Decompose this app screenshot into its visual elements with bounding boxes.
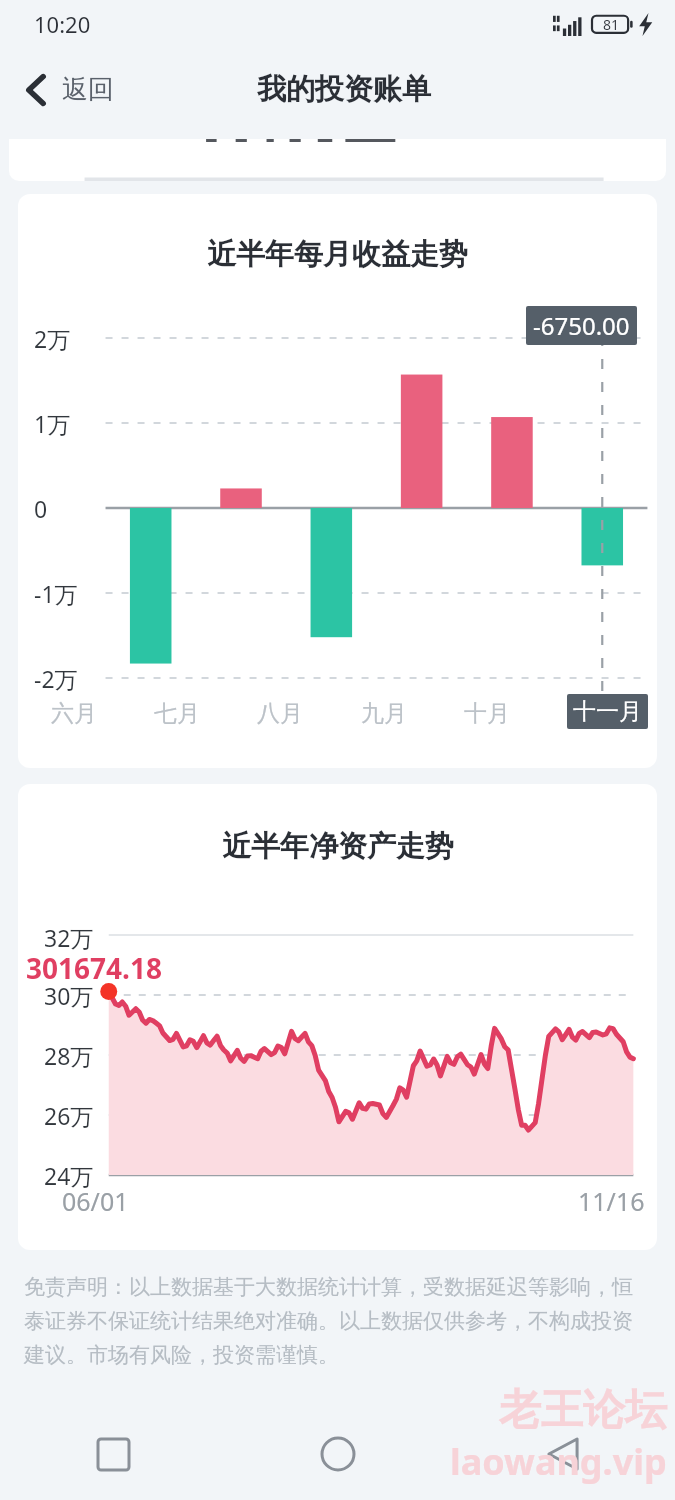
staticText: 10:20 — [34, 9, 91, 39]
button[interactable]: Recent apps — [69, 1410, 157, 1498]
staticText: 我的投资账单 — [257, 71, 431, 108]
staticText: 免责声明：以上数据基于大数据统计计算，受数据延迟等影响，恒泰证券不保证统计结果绝… — [24, 1274, 651, 1369]
staticText: 七月 — [154, 699, 200, 728]
staticText: 十月 — [464, 699, 510, 728]
button[interactable]: Back — [519, 1410, 607, 1498]
staticText: 九月 — [361, 699, 407, 728]
staticText: 81 — [603, 15, 620, 34]
staticText: 八月 — [257, 699, 303, 728]
staticText: 老王论坛 — [499, 1384, 667, 1437]
staticText: 26万 — [44, 1100, 94, 1131]
staticText: 0 — [34, 493, 48, 524]
button[interactable]: 近半年净资产走势 — [18, 784, 657, 1250]
staticText: -1万 — [34, 578, 78, 609]
button[interactable]: Home — [294, 1410, 382, 1498]
staticText: 32万 — [44, 922, 94, 953]
staticText: 11/16 — [578, 1184, 645, 1218]
button[interactable]: 近半年每月收益走势 — [18, 194, 657, 768]
staticText: 近半年每月收益走势 — [207, 236, 468, 273]
staticText: 301674.18 — [26, 949, 162, 987]
button[interactable] — [9, 139, 666, 181]
staticText: 2万 — [34, 323, 71, 354]
staticText: 06/01 — [62, 1184, 129, 1218]
staticText: 返回 — [62, 73, 114, 106]
staticText: -2万 — [34, 663, 78, 694]
staticText: 28万 — [44, 1040, 94, 1071]
staticText: -6750.00 — [533, 309, 630, 342]
staticText: 1万 — [34, 408, 71, 439]
staticText: 十一月 — [573, 697, 642, 726]
staticText: 30万 — [44, 980, 94, 1011]
staticText: 近半年净资产走势 — [222, 828, 454, 865]
staticText: laowang.vip — [450, 1437, 667, 1486]
button[interactable]: 返回 — [14, 65, 124, 114]
staticText: 24万 — [44, 1160, 94, 1191]
staticText: 六月 — [51, 699, 97, 728]
